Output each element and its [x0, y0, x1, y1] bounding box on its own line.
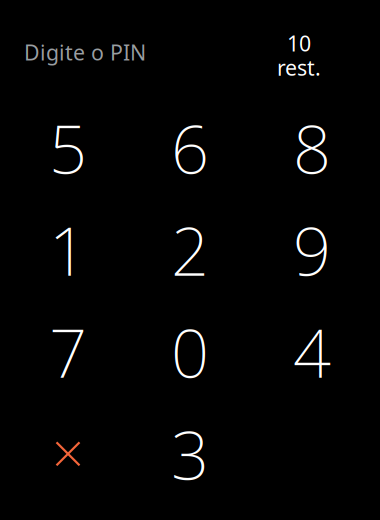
button[interactable]: 1	[7, 199, 129, 301]
staticText: 1	[49, 206, 87, 294]
staticText: 3	[171, 410, 209, 498]
button[interactable]: 7	[7, 301, 129, 403]
button[interactable]: 6	[129, 97, 251, 199]
staticText: 6	[171, 104, 209, 192]
staticText: 8	[293, 104, 331, 192]
button[interactable]: 2	[129, 199, 251, 301]
button[interactable]: Delete	[7, 403, 129, 505]
staticText: 10	[287, 29, 311, 57]
staticText: 4	[293, 308, 331, 396]
staticText: 5	[49, 104, 87, 192]
button[interactable]: 4	[251, 301, 373, 403]
staticText: 0	[171, 308, 209, 396]
button[interactable]: 0	[129, 301, 251, 403]
button[interactable]: 3	[129, 403, 251, 505]
staticText: 2	[171, 206, 209, 294]
staticText: 7	[49, 308, 87, 396]
button[interactable]: 8	[251, 97, 373, 199]
staticText: Digite o PIN	[24, 38, 146, 66]
staticText: rest.	[277, 53, 321, 82]
staticText: 9	[293, 206, 331, 294]
button[interactable]: 5	[7, 97, 129, 199]
button[interactable]: 9	[251, 199, 373, 301]
